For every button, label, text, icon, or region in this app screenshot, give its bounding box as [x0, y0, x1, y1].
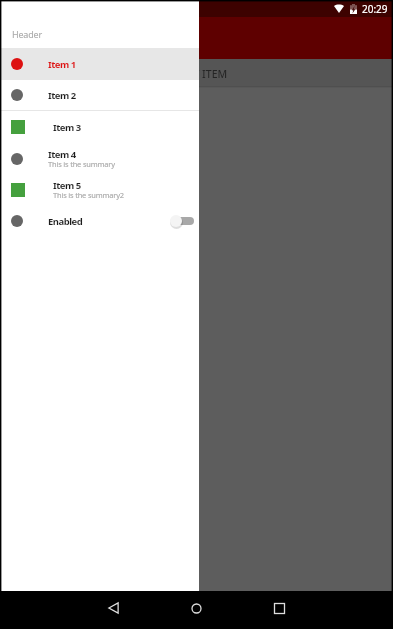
staticText: Header — [12, 28, 42, 40]
staticText: Item 2 — [48, 89, 76, 102]
staticText: Item 3 — [53, 121, 81, 134]
button[interactable]: Item 2 — [0, 79, 199, 111]
staticText: Item 5 — [53, 179, 81, 192]
staticText: Item 1 — [48, 58, 76, 71]
button[interactable]: Recents — [257, 589, 302, 627]
button[interactable]: Back — [91, 589, 136, 627]
button[interactable]: Enabled — [0, 205, 199, 237]
staticText: 20:29 — [362, 2, 388, 16]
staticText: Item 4 — [48, 148, 76, 161]
staticText: This is the summary — [48, 159, 115, 169]
staticText: This is the summary2 — [53, 190, 124, 200]
button[interactable]: Item 1 — [0, 48, 199, 80]
button[interactable]: Item 5 — [0, 174, 199, 206]
button[interactable]: Item 4 — [0, 143, 199, 175]
staticText: Enabled — [48, 215, 83, 228]
button[interactable]: Home — [174, 589, 219, 627]
staticText: RST ITEM — [181, 67, 228, 81]
button[interactable]: Item 3 — [0, 111, 199, 143]
